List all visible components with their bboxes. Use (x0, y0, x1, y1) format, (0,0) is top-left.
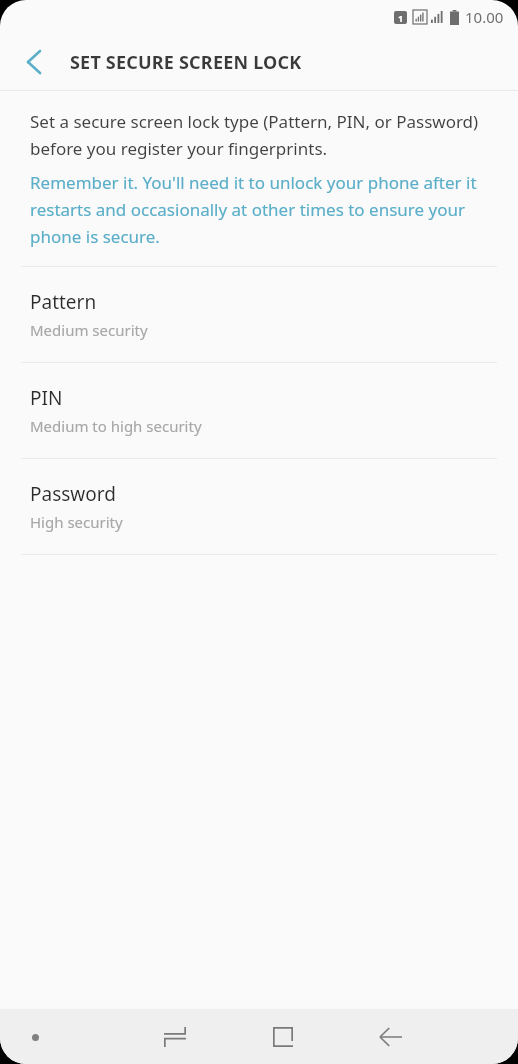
button[interactable]: Indicator (22, 1024, 48, 1050)
staticText: 10.00 (465, 7, 504, 27)
staticText: Set a secure screen lock type (Pattern, … (30, 110, 488, 160)
staticText: 1 (398, 12, 404, 24)
button[interactable]: Password (0, 459, 518, 554)
staticText: Medium to high security (30, 416, 202, 436)
staticText: PIN (30, 385, 63, 411)
staticText: Password (30, 481, 116, 507)
staticText: Medium security (30, 320, 148, 340)
button[interactable]: Home (240, 1009, 325, 1064)
button[interactable]: Back (348, 1009, 433, 1064)
staticText: Remember it. You'll need it to unlock yo… (30, 171, 488, 248)
button[interactable]: PIN (0, 363, 518, 458)
button[interactable]: Back (10, 38, 58, 86)
staticText: SET SECURE SCREEN LOCK (70, 50, 302, 75)
staticText: High security (30, 512, 123, 532)
button[interactable]: Pattern (0, 267, 518, 362)
button[interactable]: Recents (132, 1009, 217, 1064)
staticText: Pattern (30, 289, 97, 315)
